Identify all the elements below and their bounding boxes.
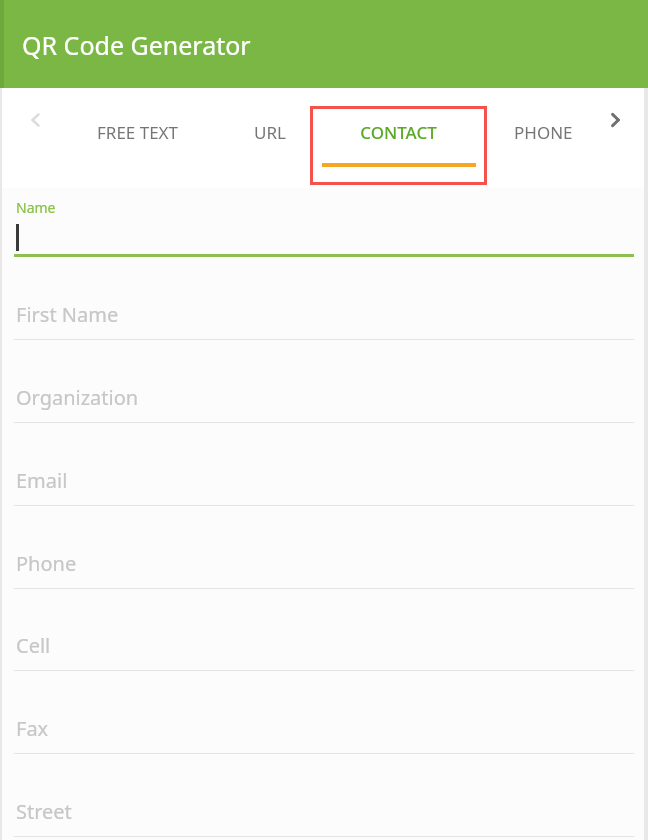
staticText: First Name — [16, 301, 119, 328]
button[interactable]: Email — [14, 467, 634, 522]
button[interactable]: PHONE — [500, 106, 586, 168]
staticText: Cell — [16, 632, 51, 659]
staticText: Street — [16, 798, 72, 825]
staticText: URL — [254, 121, 286, 144]
button[interactable]: Previous tabs — [18, 102, 54, 138]
staticText: Organization — [16, 384, 139, 411]
staticText: Fax — [16, 715, 49, 742]
button[interactable]: Next tabs — [597, 102, 633, 138]
staticText: Email — [16, 467, 68, 494]
staticText: FREE TEXT — [97, 121, 179, 144]
button[interactable]: URL — [238, 106, 302, 168]
button[interactable]: Phone — [14, 550, 634, 605]
staticText: Name — [16, 198, 56, 217]
staticText: QR Code Generator — [22, 28, 251, 62]
button[interactable]: Fax — [14, 715, 634, 770]
button[interactable]: Organization — [14, 384, 634, 439]
staticText: CONTACT — [310, 121, 487, 144]
button[interactable]: FREE TEXT — [78, 106, 198, 168]
staticText: PHONE — [514, 121, 573, 144]
button[interactable]: Cell — [14, 632, 634, 687]
button[interactable]: First Name — [14, 301, 634, 356]
button[interactable]: Street — [14, 798, 634, 840]
button[interactable]: CONTACT — [310, 106, 487, 185]
staticText: Phone — [16, 550, 77, 577]
